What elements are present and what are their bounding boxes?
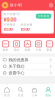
staticText: 立即提现 bbox=[38, 14, 50, 18]
staticText: 我的优惠券 bbox=[9, 57, 29, 62]
staticText: ¥0.00 bbox=[4, 26, 13, 32]
button[interactable]: 发现 bbox=[14, 87, 28, 97]
staticText: 提额 bbox=[24, 48, 30, 51]
staticText: 还款 bbox=[13, 48, 19, 51]
button[interactable]: 还款 bbox=[11, 39, 22, 52]
button[interactable]: 订单 bbox=[27, 87, 41, 97]
button[interactable]: 我的优惠券 bbox=[0, 57, 55, 63]
staticText: 可用额度 bbox=[4, 23, 16, 26]
staticText: 更多 bbox=[46, 48, 52, 51]
staticText: 订单 bbox=[31, 94, 37, 97]
staticText: 首页 bbox=[4, 94, 10, 97]
button[interactable]: 账单 bbox=[0, 39, 11, 52]
button[interactable]: 关于我们 bbox=[0, 63, 55, 69]
button[interactable]: Settings bbox=[49, 3, 53, 7]
button[interactable]: 设置中心 bbox=[0, 70, 55, 76]
button[interactable]: 我的 bbox=[41, 87, 55, 97]
staticText: 卡券 bbox=[35, 48, 41, 51]
staticText: 我的 bbox=[45, 94, 51, 97]
button[interactable]: 首页 bbox=[0, 87, 14, 97]
staticText: 张小明 bbox=[10, 3, 22, 8]
staticText: 账户余额(元) bbox=[4, 12, 21, 16]
staticText: 设置中心 bbox=[9, 70, 25, 75]
staticText: 账单 bbox=[2, 48, 8, 51]
staticText: 关于我们 bbox=[9, 64, 25, 69]
staticText: 发现 bbox=[18, 94, 24, 97]
button[interactable]: 立即提现 bbox=[36, 14, 51, 19]
button[interactable]: 更多 bbox=[44, 39, 55, 52]
staticText: 待还金额 bbox=[21, 23, 33, 26]
button[interactable]: 卡券 bbox=[33, 39, 44, 52]
button[interactable]: 提额 bbox=[22, 39, 33, 52]
staticText: ¥0.00 bbox=[21, 26, 30, 32]
staticText: ¥0.00 bbox=[4, 16, 17, 23]
